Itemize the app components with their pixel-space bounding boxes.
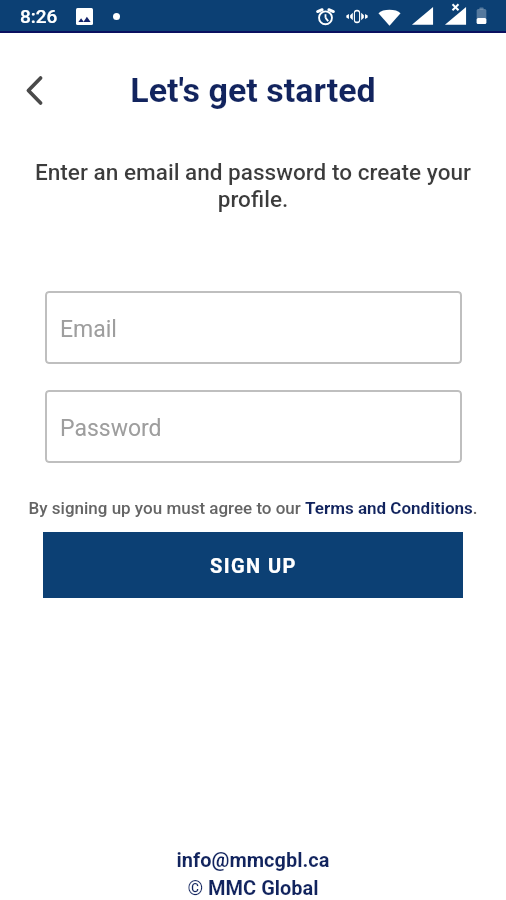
staticText: Password <box>60 415 162 442</box>
button[interactable]: Back <box>12 68 56 112</box>
button[interactable]: By signing up you must agree to our Term… <box>0 498 506 518</box>
button[interactable]: Password <box>45 390 462 463</box>
staticText: 8:26 <box>20 5 58 27</box>
button[interactable]: SIGN UP <box>43 532 463 598</box>
staticText: Let's get started <box>0 70 506 110</box>
staticText: Enter an email and password to create yo… <box>28 159 478 213</box>
staticText: SIGN UP <box>210 554 297 577</box>
staticText: Email <box>60 316 117 343</box>
staticText: info@mmcgbl.ca <box>0 848 506 871</box>
button[interactable]: Email <box>45 291 462 364</box>
staticText: © MMC Global <box>0 876 506 899</box>
